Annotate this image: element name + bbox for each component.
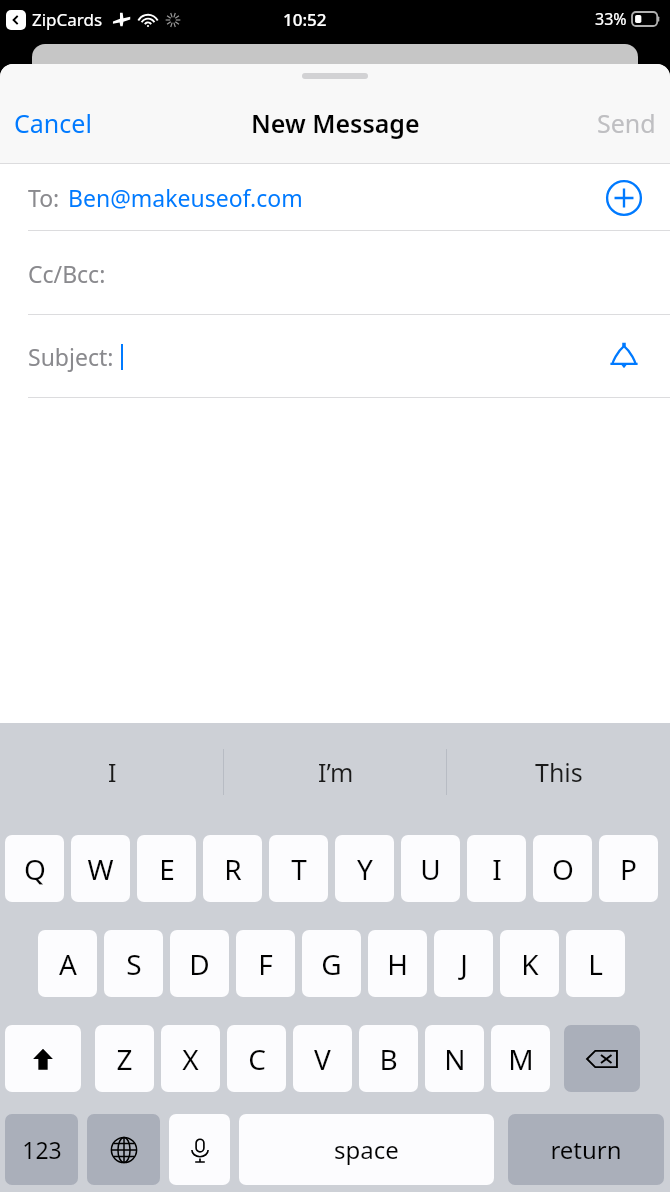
button[interactable]: Q — [5, 835, 64, 902]
button[interactable]: W — [71, 835, 130, 902]
button[interactable]: D — [170, 930, 229, 997]
button[interactable]: Z — [95, 1025, 154, 1092]
staticText: Send — [597, 106, 656, 140]
staticText: B — [379, 1040, 398, 1078]
staticText: X — [182, 1040, 199, 1078]
staticText: 123 — [22, 1134, 62, 1165]
staticText: V — [314, 1040, 331, 1078]
staticText: Cancel — [14, 106, 92, 140]
staticText: F — [258, 945, 273, 983]
button[interactable]: Backspace — [564, 1025, 640, 1092]
button[interactable]: I — [467, 835, 526, 902]
button[interactable]: Send — [597, 106, 656, 140]
staticText: M — [508, 1040, 534, 1078]
staticText: Z — [116, 1040, 133, 1078]
staticText: W — [87, 850, 114, 888]
staticText: return — [550, 1133, 622, 1166]
button[interactable]: H — [368, 930, 427, 997]
staticText: O — [552, 850, 574, 888]
button[interactable]: return — [508, 1114, 664, 1185]
button[interactable]: Back to ZipCards — [6, 8, 181, 31]
staticText: L — [588, 945, 603, 983]
staticText: New Message — [251, 106, 420, 140]
staticText: J — [460, 945, 468, 983]
button[interactable]: Shift — [5, 1025, 81, 1092]
staticText: Ben@makeuseof.com — [68, 182, 303, 213]
staticText: Subject: — [28, 341, 114, 372]
button[interactable]: L — [566, 930, 625, 997]
button[interactable]: space — [239, 1114, 494, 1185]
button[interactable]: E — [137, 835, 196, 902]
button[interactable]: O — [533, 835, 592, 902]
staticText: G — [321, 945, 342, 983]
button[interactable]: B — [359, 1025, 418, 1092]
button[interactable]: Y — [335, 835, 394, 902]
button[interactable]: Switch keyboard — [87, 1114, 160, 1185]
button[interactable]: Cancel — [14, 106, 92, 140]
staticText: space — [334, 1133, 399, 1166]
button[interactable]: T — [269, 835, 328, 902]
staticText: 10:52 — [283, 8, 327, 31]
button[interactable]: F — [236, 930, 295, 997]
button[interactable]: Subject: — [0, 315, 670, 398]
button[interactable]: C — [227, 1025, 286, 1092]
button[interactable]: K — [500, 930, 559, 997]
staticText: This — [535, 755, 583, 789]
button[interactable]: N — [425, 1025, 484, 1092]
staticText: Cc/Bcc: — [28, 258, 106, 289]
staticText: I — [492, 850, 502, 888]
button[interactable]: X — [161, 1025, 220, 1092]
staticText: Q — [24, 850, 46, 888]
button[interactable]: U — [401, 835, 460, 902]
button[interactable]: Dictate — [169, 1114, 230, 1185]
staticText: R — [224, 850, 242, 888]
staticText: To: — [28, 182, 60, 213]
button[interactable]: V — [293, 1025, 352, 1092]
staticText: I’m — [318, 755, 354, 789]
button[interactable]: Cc/Bcc: — [0, 231, 670, 315]
staticText: N — [444, 1040, 466, 1078]
button[interactable]: Add contact — [602, 176, 646, 220]
staticText: ZipCards — [32, 8, 103, 31]
button[interactable]: S — [104, 930, 163, 997]
staticText: H — [387, 945, 408, 983]
staticText: I — [108, 755, 117, 789]
staticText: A — [59, 945, 77, 983]
staticText: T — [291, 850, 307, 888]
staticText: U — [420, 850, 441, 888]
staticText: P — [620, 850, 637, 888]
button[interactable]: G — [302, 930, 361, 997]
staticText: D — [189, 945, 210, 983]
button[interactable]: This — [447, 723, 670, 821]
button[interactable]: 123 — [5, 1114, 78, 1185]
staticText: K — [521, 945, 539, 983]
button[interactable]: To: — [0, 164, 670, 231]
button[interactable]: R — [203, 835, 262, 902]
button[interactable]: A — [38, 930, 97, 997]
button[interactable]: M — [491, 1025, 550, 1092]
staticText: Y — [357, 850, 373, 888]
button[interactable]: I — [0, 723, 224, 821]
staticText: S — [126, 945, 142, 983]
button[interactable]: Notify me — [602, 335, 646, 379]
staticText: E — [159, 850, 175, 888]
staticText: C — [248, 1040, 266, 1078]
staticText: 33% — [595, 8, 627, 30]
button[interactable]: P — [599, 835, 658, 902]
button[interactable]: I’m — [224, 723, 447, 821]
button[interactable]: J — [434, 930, 493, 997]
